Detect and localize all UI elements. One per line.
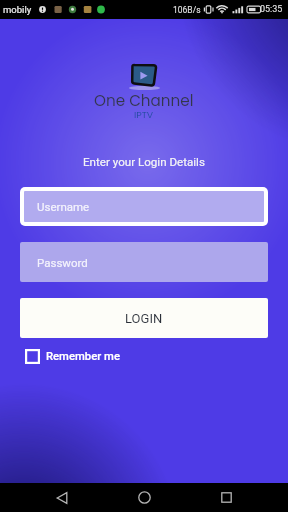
button[interactable]: Remember me <box>20 345 150 367</box>
staticText: 05:35 <box>260 4 283 15</box>
staticText: Enter your Login Details <box>83 155 205 169</box>
staticText: Username <box>37 200 90 213</box>
staticText: Password <box>37 256 88 269</box>
staticText: IPTV <box>134 108 154 121</box>
staticText: LOGIN <box>125 311 163 326</box>
button[interactable]: Home <box>124 483 164 512</box>
staticText: 106B/s <box>173 5 201 15</box>
staticText: Remember me <box>46 350 120 363</box>
staticText: One Channel <box>94 90 194 111</box>
button[interactable]: Username <box>24 191 264 222</box>
button[interactable]: Password <box>20 242 268 282</box>
button[interactable]: Recents <box>206 483 246 512</box>
staticText: mobily <box>3 4 32 15</box>
button[interactable]: Back <box>42 483 82 512</box>
button[interactable]: LOGIN <box>20 298 268 338</box>
